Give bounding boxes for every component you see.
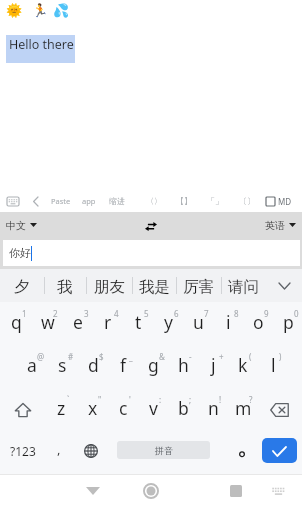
button[interactable]: Home: [130, 474, 171, 508]
staticText: g: [148, 353, 159, 377]
staticText: 9: [264, 308, 269, 319]
button[interactable]: Recent apps: [216, 474, 256, 508]
button[interactable]: 我: [44, 269, 86, 302]
staticText: +: [219, 351, 224, 362]
button[interactable]: Switch keyboard: [258, 474, 298, 508]
button[interactable]: u: [182, 302, 212, 345]
button[interactable]: ?123: [0, 429, 45, 472]
staticText: 5: [144, 308, 149, 319]
button[interactable]: 拼音: [117, 441, 210, 459]
button[interactable]: c: [107, 388, 137, 431]
staticText: Paste: [51, 196, 71, 206]
button[interactable]: 请问: [221, 269, 265, 302]
staticText: u: [193, 310, 204, 334]
button[interactable]: a: [15, 345, 46, 388]
staticText: t: [135, 310, 142, 334]
button[interactable]: Delete: [257, 388, 302, 431]
button[interactable]: Enter: [262, 438, 297, 463]
button[interactable]: 朋友: [86, 269, 132, 302]
staticText: 英语: [265, 219, 285, 232]
button[interactable]: Period: [226, 429, 257, 472]
staticText: l: [271, 353, 276, 377]
button[interactable]: e: [62, 302, 92, 345]
staticText: m: [235, 396, 252, 420]
button[interactable]: Hide keyboard: [73, 474, 113, 508]
staticText: 1: [22, 308, 27, 319]
button[interactable]: b: [167, 388, 197, 431]
button[interactable]: x: [76, 388, 107, 431]
staticText: -: [189, 351, 192, 362]
staticText: 0: [294, 308, 299, 319]
button[interactable]: Swap languages: [138, 213, 164, 239]
button[interactable]: f: [107, 345, 137, 388]
button[interactable]: p: [272, 302, 302, 345]
button[interactable]: Keyboard settings: [2, 190, 24, 212]
button[interactable]: o: [242, 302, 272, 345]
staticText: 7: [204, 308, 209, 319]
staticText: f: [120, 353, 127, 377]
button[interactable]: m: [227, 388, 257, 431]
staticText: _: [129, 351, 133, 362]
button[interactable]: t: [122, 302, 152, 345]
staticText: d: [88, 353, 99, 377]
button[interactable]: Change language: [76, 429, 106, 472]
staticText: Hello there: [9, 36, 74, 53]
button[interactable]: d: [77, 345, 107, 388]
button[interactable]: 我是: [132, 269, 176, 302]
staticText: ,: [57, 440, 61, 458]
button[interactable]: y: [152, 302, 182, 345]
button[interactable]: 〈〉: [145, 190, 162, 212]
button[interactable]: More suggestions: [266, 269, 302, 302]
staticText: :: [159, 394, 162, 405]
staticText: 〈〉: [146, 196, 162, 206]
button[interactable]: w: [31, 302, 62, 345]
staticText: i: [226, 310, 231, 334]
button[interactable]: n: [197, 388, 227, 431]
staticText: j: [211, 353, 216, 377]
button[interactable]: g: [137, 345, 167, 388]
staticText: h: [178, 353, 189, 377]
button[interactable]: 夕: [0, 269, 44, 302]
button[interactable]: l: [257, 345, 287, 388]
staticText: `: [67, 394, 70, 405]
button[interactable]: 【】: [175, 190, 193, 212]
button[interactable]: Paste: [50, 190, 72, 212]
button[interactable]: Previous: [28, 190, 43, 212]
staticText: $: [99, 351, 104, 362]
button[interactable]: i: [212, 302, 242, 345]
button[interactable]: 英语: [263, 212, 298, 240]
button[interactable]: 缩进: [108, 190, 125, 212]
staticText: &: [159, 351, 165, 362]
staticText: y: [164, 310, 173, 334]
staticText: MD: [278, 196, 292, 207]
button[interactable]: z: [45, 388, 76, 431]
button[interactable]: j: [197, 345, 227, 388]
button[interactable]: 厉害: [176, 269, 221, 302]
staticText: 🌞: [6, 3, 23, 18]
staticText: 🏃: [32, 3, 49, 18]
staticText: e: [73, 310, 83, 334]
button[interactable]: app: [82, 190, 96, 212]
staticText: ;: [189, 394, 192, 405]
button[interactable]: MD: [266, 190, 292, 212]
staticText: 💦: [53, 3, 70, 18]
staticText: 中文: [6, 219, 26, 232]
staticText: 6: [174, 308, 179, 319]
button[interactable]: Shift: [0, 388, 45, 431]
staticText: 夕: [14, 277, 30, 297]
button[interactable]: s: [46, 345, 77, 388]
button[interactable]: 〔〕: [238, 190, 255, 212]
button[interactable]: h: [167, 345, 197, 388]
button[interactable]: ,: [45, 427, 73, 470]
button[interactable]: r: [92, 302, 122, 345]
staticText: app: [82, 196, 96, 206]
staticText: !: [219, 394, 222, 405]
button[interactable]: v: [137, 388, 167, 431]
button[interactable]: k: [227, 345, 257, 388]
staticText: q: [11, 310, 22, 334]
staticText: 朋友: [94, 277, 125, 297]
button[interactable]: 「」: [206, 190, 224, 212]
staticText: ?123: [10, 443, 36, 459]
button[interactable]: 中文: [4, 212, 39, 240]
button[interactable]: q: [0, 302, 31, 345]
